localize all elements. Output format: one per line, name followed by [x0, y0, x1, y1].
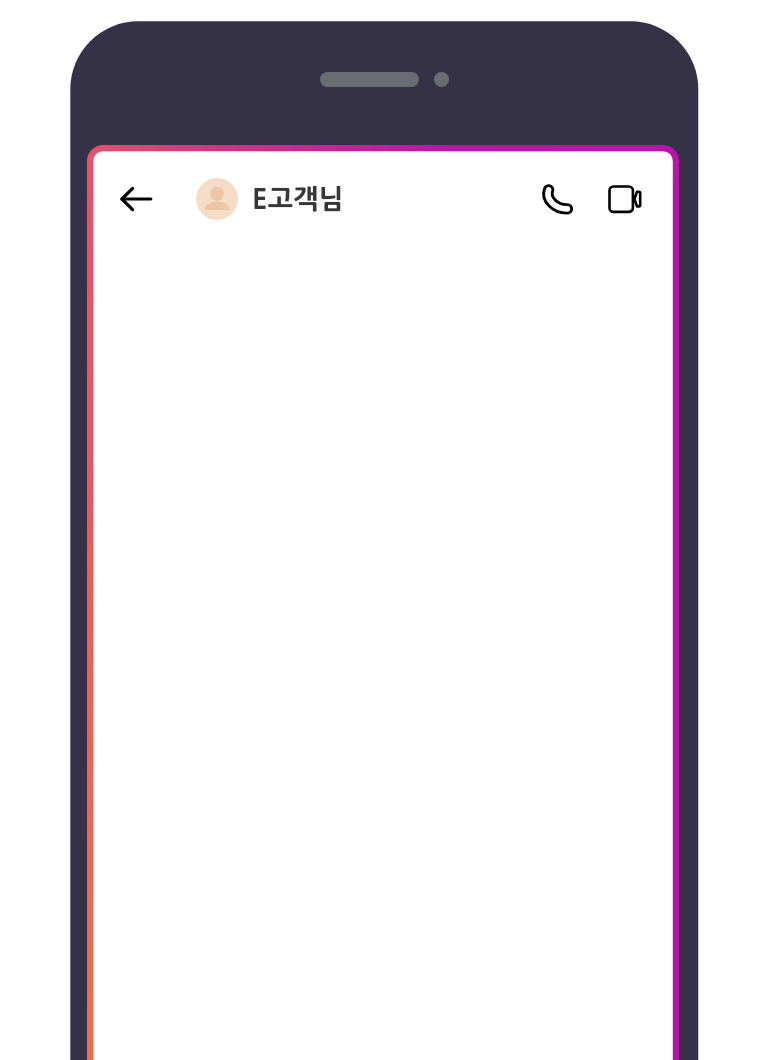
button[interactable]: Back [112, 175, 160, 223]
button[interactable]: Video call [600, 176, 648, 224]
button[interactable]: Voice call [534, 176, 582, 224]
staticText: E고객님 [252, 186, 344, 213]
